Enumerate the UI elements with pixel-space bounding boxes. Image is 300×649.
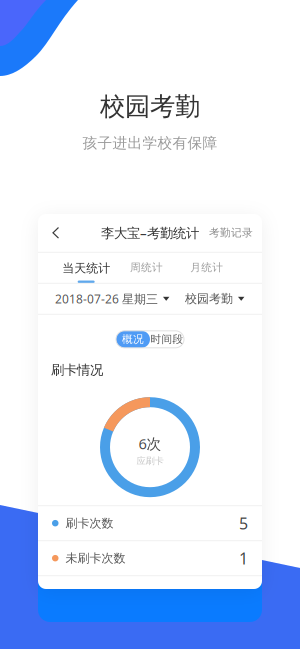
button[interactable]: 校园考勤 (185, 284, 245, 313)
staticText: 校园考勤 (185, 291, 233, 306)
button[interactable]: 当天统计 (56, 253, 116, 283)
button[interactable]: Back (47, 220, 65, 246)
staticText: 刷卡次数 (65, 516, 113, 530)
staticText: 孩子进出学校有保障 (82, 134, 217, 152)
button[interactable]: 考勤记录 (209, 219, 253, 246)
staticText: 未刷卡次数 (65, 551, 125, 565)
staticText: 应刷卡 (136, 455, 163, 467)
staticText: 2018-07-26 星期三 (55, 291, 158, 307)
staticText: 概况 (122, 333, 144, 346)
button[interactable]: 概况 (116, 331, 150, 348)
staticText: 月统计 (190, 261, 223, 274)
staticText: 时间段 (150, 333, 183, 346)
button[interactable]: 时间段 (150, 331, 184, 348)
staticText: 李大宝–考勤统计 (101, 224, 199, 242)
staticText: 5 (239, 513, 248, 534)
staticText: 考勤记录 (209, 226, 253, 239)
button[interactable]: 月统计 (177, 253, 237, 283)
button[interactable]: 2018-07-26 星期三 (55, 284, 170, 314)
staticText: 1 (239, 548, 248, 569)
staticText: 当天统计 (62, 261, 110, 275)
staticText: 周统计 (130, 261, 163, 274)
staticText: 6次 (138, 434, 161, 453)
button[interactable]: 周统计 (116, 253, 177, 283)
staticText: 刷卡情况 (51, 362, 103, 378)
staticText: 校园考勤 (100, 91, 200, 122)
